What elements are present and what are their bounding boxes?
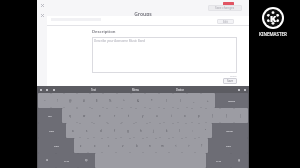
staticText: q xyxy=(69,114,71,118)
button[interactable]: m xyxy=(156,138,169,153)
staticText: ⚙ xyxy=(46,159,49,162)
staticText: Groups xyxy=(134,11,152,18)
button[interactable]: Menu xyxy=(40,13,45,18)
button[interactable]: ☺ xyxy=(78,153,95,168)
button[interactable]: Undo xyxy=(39,88,43,92)
button[interactable]: k xyxy=(160,123,173,138)
staticText: w xyxy=(83,114,86,118)
staticText: " xyxy=(205,129,207,133)
button[interactable]: & xyxy=(131,93,145,108)
button[interactable]: d xyxy=(94,123,108,138)
staticText: { xyxy=(212,114,214,118)
button[interactable]: @ xyxy=(64,93,77,108)
button[interactable]: Clipboard xyxy=(52,88,56,92)
button[interactable]: More xyxy=(237,88,241,92)
button[interactable]: Edit xyxy=(217,19,234,24)
button[interactable]: b xyxy=(130,138,143,153)
button[interactable]: # xyxy=(77,93,90,108)
button[interactable]: f xyxy=(108,123,121,138)
button[interactable]: h xyxy=(134,123,147,138)
staticText: * xyxy=(151,99,153,103)
staticText: f xyxy=(114,129,115,133)
button[interactable]: Save xyxy=(223,78,237,84)
button[interactable]: u xyxy=(150,108,164,123)
button[interactable]: tab xyxy=(38,108,62,123)
button[interactable]: p xyxy=(192,108,206,123)
button[interactable]: Hide keyboard xyxy=(243,88,247,92)
button[interactable]: % xyxy=(103,93,117,108)
button[interactable]: delete xyxy=(215,93,248,108)
staticText: ☺ xyxy=(85,159,88,162)
button[interactable]: ⚙ xyxy=(38,153,56,168)
button[interactable]: ▤ xyxy=(231,153,248,168)
button[interactable]: caps xyxy=(38,123,66,138)
staticText: c xyxy=(108,144,110,148)
button[interactable]: y xyxy=(136,108,150,123)
button[interactable]: t xyxy=(122,108,136,123)
button[interactable]: n xyxy=(143,138,156,153)
button[interactable]: Save changes xyxy=(208,5,242,11)
button[interactable]: Close xyxy=(40,3,45,8)
button[interactable]: shift xyxy=(208,138,248,153)
staticText: v xyxy=(122,144,124,148)
button[interactable]: o xyxy=(178,108,192,123)
staticText: Edit xyxy=(223,20,228,24)
staticText: ~ xyxy=(44,99,46,103)
staticText: # xyxy=(83,99,85,103)
staticText: z xyxy=(80,144,82,148)
button[interactable]: w xyxy=(77,108,92,123)
button[interactable]: g xyxy=(121,123,134,138)
staticText: n xyxy=(149,144,151,148)
button[interactable]: e xyxy=(92,108,107,123)
button[interactable]: shift xyxy=(38,138,74,153)
button[interactable]: return xyxy=(212,123,248,138)
button[interactable]: ?123 xyxy=(56,153,78,168)
staticText: Menu xyxy=(132,88,140,92)
staticText: l xyxy=(179,129,180,133)
staticText: Device xyxy=(176,88,184,92)
button[interactable]: z xyxy=(74,138,88,153)
button[interactable]: s xyxy=(80,123,94,138)
staticText: : xyxy=(192,129,193,133)
staticText: h xyxy=(140,129,142,133)
staticText: ?123 xyxy=(64,159,70,162)
button[interactable]: x xyxy=(88,138,102,153)
button[interactable]: v xyxy=(116,138,130,153)
button[interactable]: Redo xyxy=(45,88,49,92)
staticText: ? xyxy=(201,144,203,148)
staticText: KINEMASTER xyxy=(259,31,287,37)
button[interactable]: ?123 xyxy=(206,153,231,168)
staticText: % xyxy=(109,99,112,103)
button[interactable]: $ xyxy=(90,93,103,108)
button[interactable]: a xyxy=(66,123,80,138)
staticText: | xyxy=(240,114,242,118)
button[interactable]: q xyxy=(62,108,77,123)
staticText: x xyxy=(94,144,96,148)
button[interactable]: Describe your Awesome Music Band xyxy=(92,37,237,73)
staticText: ) xyxy=(180,99,181,103)
staticText: Description xyxy=(92,29,116,35)
staticText: o xyxy=(184,114,186,118)
